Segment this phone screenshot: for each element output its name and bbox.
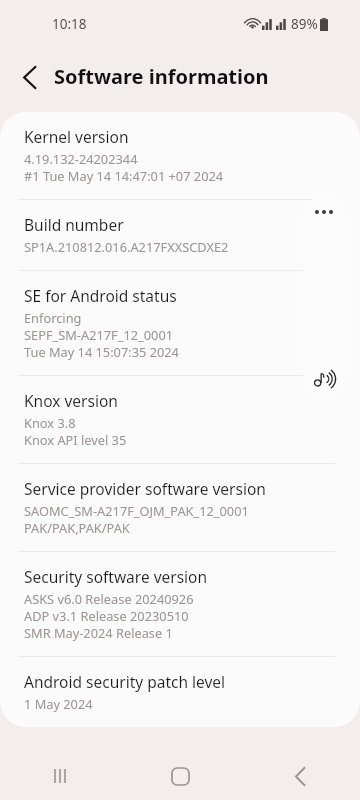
staticText: Tue May 14 15:07:35 2024 xyxy=(24,343,179,360)
staticText: Android security patch level xyxy=(24,671,226,692)
staticText: Enforcing xyxy=(24,309,82,326)
staticText: 10:18 xyxy=(52,15,87,33)
staticText: SMR May-2024 Release 1 xyxy=(24,624,173,641)
staticText: Knox API level 35 xyxy=(24,431,127,448)
button[interactable]: Knox version xyxy=(0,376,360,463)
staticText: 1 May 2024 xyxy=(24,695,93,712)
button[interactable]: Kernel version xyxy=(0,112,360,199)
button[interactable]: Build number xyxy=(0,200,360,270)
button[interactable]: SE for Android status xyxy=(0,271,360,375)
staticText: #1 Tue May 14 14:47:01 +07 2024 xyxy=(24,167,224,184)
staticText: Software information xyxy=(54,63,269,90)
button[interactable]: Home xyxy=(120,752,240,800)
staticText: Kernel version xyxy=(24,126,129,147)
staticText: Service provider software version xyxy=(24,478,266,499)
staticText: Knox 3.8 xyxy=(24,414,76,431)
staticText: Build number xyxy=(24,214,124,235)
button[interactable]: Edge panel xyxy=(303,196,345,400)
staticText: SEPF_SM-A217F_12_0001 xyxy=(24,326,174,343)
button[interactable]: Security software version xyxy=(0,552,360,656)
button[interactable]: Service provider software version xyxy=(0,464,360,551)
button[interactable]: Recent apps xyxy=(0,752,120,800)
button[interactable]: Back xyxy=(10,57,50,97)
staticText: ADP v3.1 Release 20230510 xyxy=(24,607,189,624)
staticText: Security software version xyxy=(24,566,208,587)
staticText: PAK/PAK,PAK/PAK xyxy=(24,519,130,536)
staticText: Knox version xyxy=(24,390,118,411)
staticText: SAOMC_SM-A217F_OJM_PAK_12_0001 xyxy=(24,502,249,519)
staticText: SE for Android status xyxy=(24,285,177,306)
button[interactable]: Back xyxy=(240,752,360,800)
button[interactable]: Android security patch level xyxy=(0,657,360,727)
staticText: ASKS v6.0 Release 20240926 xyxy=(24,590,194,607)
staticText: 89% xyxy=(291,15,318,33)
staticText: 4.19.132-24202344 xyxy=(24,150,138,167)
staticText: SP1A.210812.016.A217FXXSCDXE2 xyxy=(24,238,229,255)
